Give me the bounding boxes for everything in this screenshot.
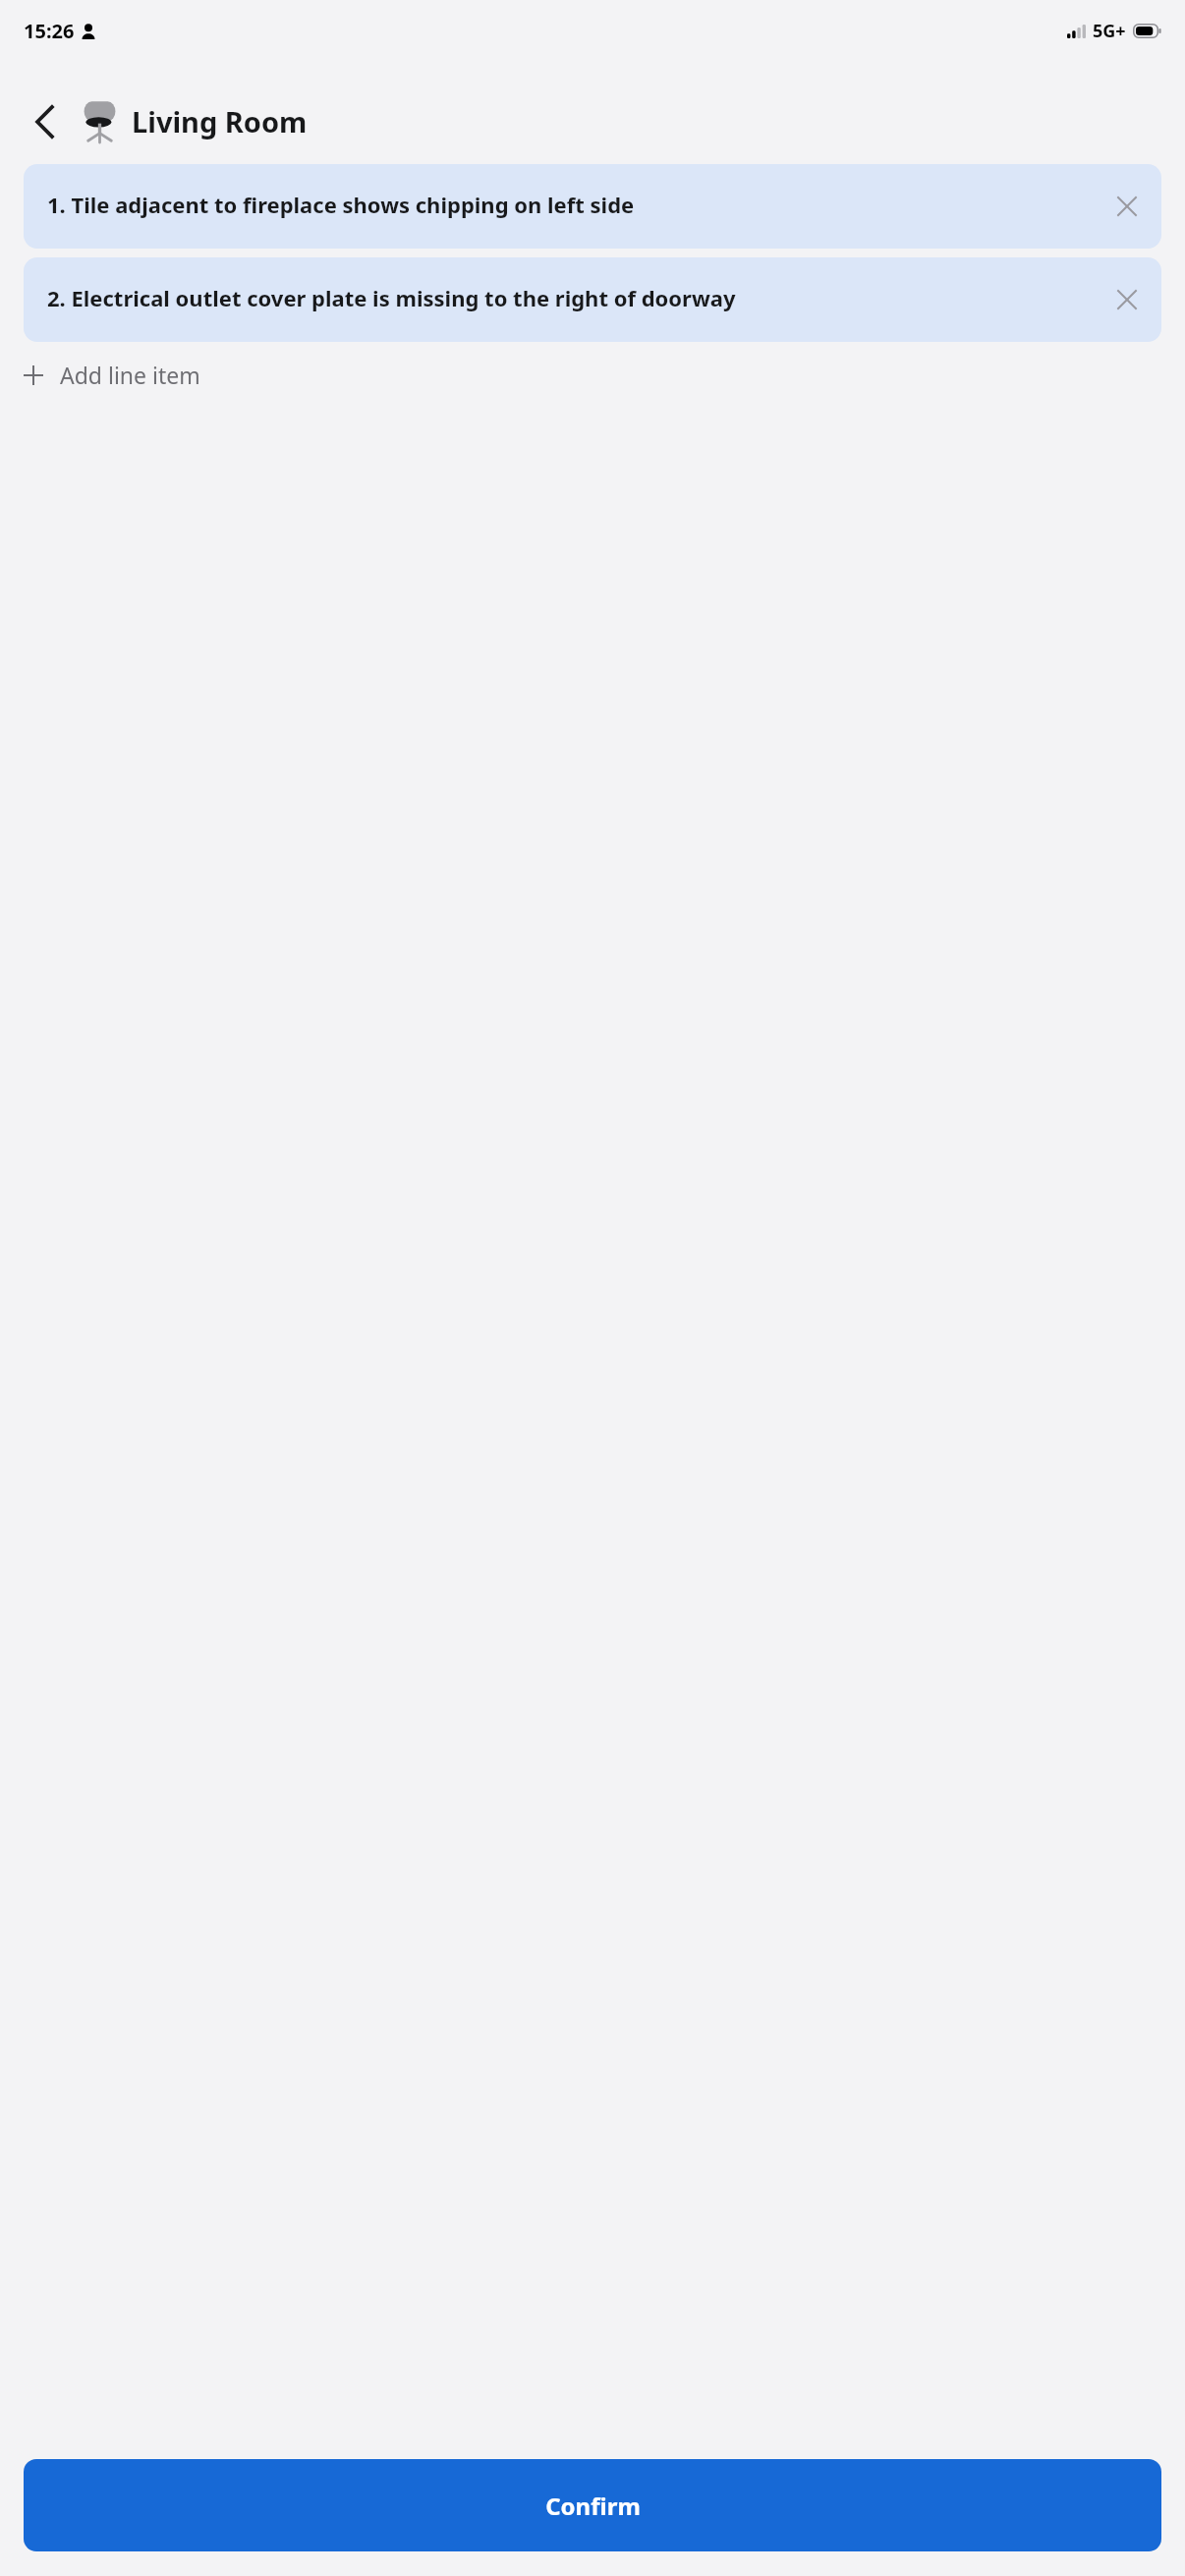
- button[interactable]: Confirm: [24, 2459, 1161, 2551]
- button[interactable]: Add line item: [24, 348, 1161, 402]
- staticText: Add line item: [60, 360, 200, 390]
- staticText: 1. Tile adjacent to fireplace shows chip…: [47, 190, 1100, 219]
- button[interactable]: Remove line item: [1110, 283, 1144, 316]
- button[interactable]: 1. Tile adjacent to fireplace shows chip…: [24, 164, 1161, 249]
- button[interactable]: Remove line item: [1110, 190, 1144, 223]
- staticText: Confirm: [545, 2490, 641, 2522]
- staticText: 15:26: [24, 18, 75, 44]
- staticText: 5G+: [1093, 19, 1126, 43]
- staticText: Living Room: [132, 102, 308, 140]
- button[interactable]: Back: [24, 101, 65, 142]
- button[interactable]: 2. Electrical outlet cover plate is miss…: [24, 257, 1161, 342]
- staticText: 2. Electrical outlet cover plate is miss…: [47, 283, 1100, 312]
